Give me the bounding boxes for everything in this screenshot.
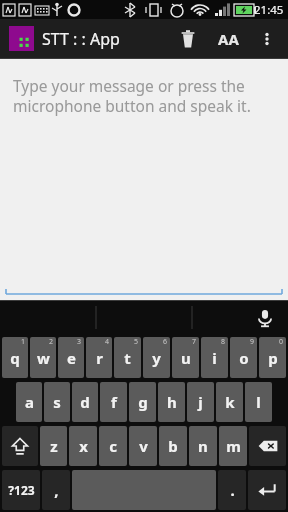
staticText: ?123: [8, 482, 35, 498]
staticText: 5: [134, 337, 139, 347]
staticText: 21:45: [254, 2, 284, 18]
staticText: STT : : App: [42, 28, 120, 50]
staticText: c: [109, 436, 117, 456]
button[interactable]: s: [44, 382, 70, 422]
button[interactable]: w: [30, 337, 56, 378]
button[interactable]: u: [172, 337, 199, 378]
button[interactable]: d: [72, 382, 98, 422]
button[interactable]: l: [245, 382, 272, 422]
button[interactable]: v: [129, 426, 157, 466]
staticText: i: [212, 348, 217, 368]
staticText: w: [37, 348, 50, 368]
button[interactable]: del: [249, 426, 286, 466]
staticText: j: [198, 392, 203, 412]
button[interactable]: b: [159, 426, 187, 466]
staticText: 1: [21, 337, 26, 347]
staticText: a: [25, 392, 34, 412]
staticText: g: [138, 392, 148, 412]
button[interactable]: More options: [248, 20, 286, 58]
staticText: h: [167, 392, 177, 412]
button[interactable]: y: [143, 337, 170, 378]
staticText: y: [152, 348, 161, 368]
button[interactable]: j: [187, 382, 214, 422]
button[interactable]: t: [114, 337, 141, 378]
button[interactable]: m: [219, 426, 247, 466]
staticText: d: [80, 392, 90, 412]
staticText: 0: [279, 337, 284, 347]
staticText: 9: [250, 337, 255, 347]
button[interactable]: k: [216, 382, 243, 422]
button[interactable]: ?123: [2, 470, 40, 510]
staticText: l: [256, 392, 261, 412]
button[interactable]: Delete: [168, 19, 208, 58]
staticText: t: [124, 348, 131, 368]
staticText: u: [181, 348, 191, 368]
staticText: s: [53, 392, 61, 412]
staticText: ,: [54, 480, 59, 500]
staticText: n: [198, 436, 208, 456]
button[interactable]: n: [189, 426, 217, 466]
button[interactable]: o: [230, 337, 257, 378]
button[interactable]: shift: [2, 426, 38, 466]
button[interactable]: f: [100, 382, 127, 422]
staticText: p: [268, 348, 278, 368]
button[interactable]: r: [86, 337, 112, 378]
staticText: b: [168, 436, 178, 456]
staticText: 8: [221, 337, 226, 347]
button[interactable]: p: [259, 337, 286, 378]
staticText: q: [10, 348, 20, 368]
button[interactable]: e: [58, 337, 84, 378]
staticText: e: [67, 348, 76, 368]
staticText: 7: [192, 337, 197, 347]
staticText: v: [139, 436, 148, 456]
staticText: m: [226, 436, 241, 456]
button[interactable]: x: [69, 426, 97, 466]
button[interactable]: a: [16, 382, 42, 422]
button[interactable]: i: [201, 337, 228, 378]
staticText: o: [239, 348, 249, 368]
staticText: AA: [218, 29, 239, 49]
staticText: r: [96, 348, 103, 368]
button[interactable]: App icon: [9, 26, 34, 51]
button[interactable]: g: [129, 382, 156, 422]
button[interactable]: q: [2, 337, 28, 378]
staticText: x: [79, 436, 88, 456]
staticText: 4: [105, 337, 110, 347]
button[interactable]: Text size: [208, 19, 248, 58]
button[interactable]: enter: [248, 470, 286, 510]
button[interactable]: h: [158, 382, 185, 422]
staticText: 6: [163, 337, 168, 347]
button[interactable]: z: [40, 426, 67, 466]
button[interactable]: c: [99, 426, 127, 466]
staticText: 2: [49, 337, 54, 347]
staticText: k: [225, 392, 235, 412]
button[interactable]: .: [218, 470, 246, 510]
staticText: Type your message or press the microphon…: [13, 75, 251, 117]
staticText: z: [50, 436, 58, 456]
staticText: f: [111, 392, 117, 412]
staticText: .: [230, 480, 235, 500]
staticText: 3: [77, 337, 82, 347]
button[interactable]: ,: [42, 470, 70, 510]
button[interactable]: Voice input: [252, 305, 278, 331]
